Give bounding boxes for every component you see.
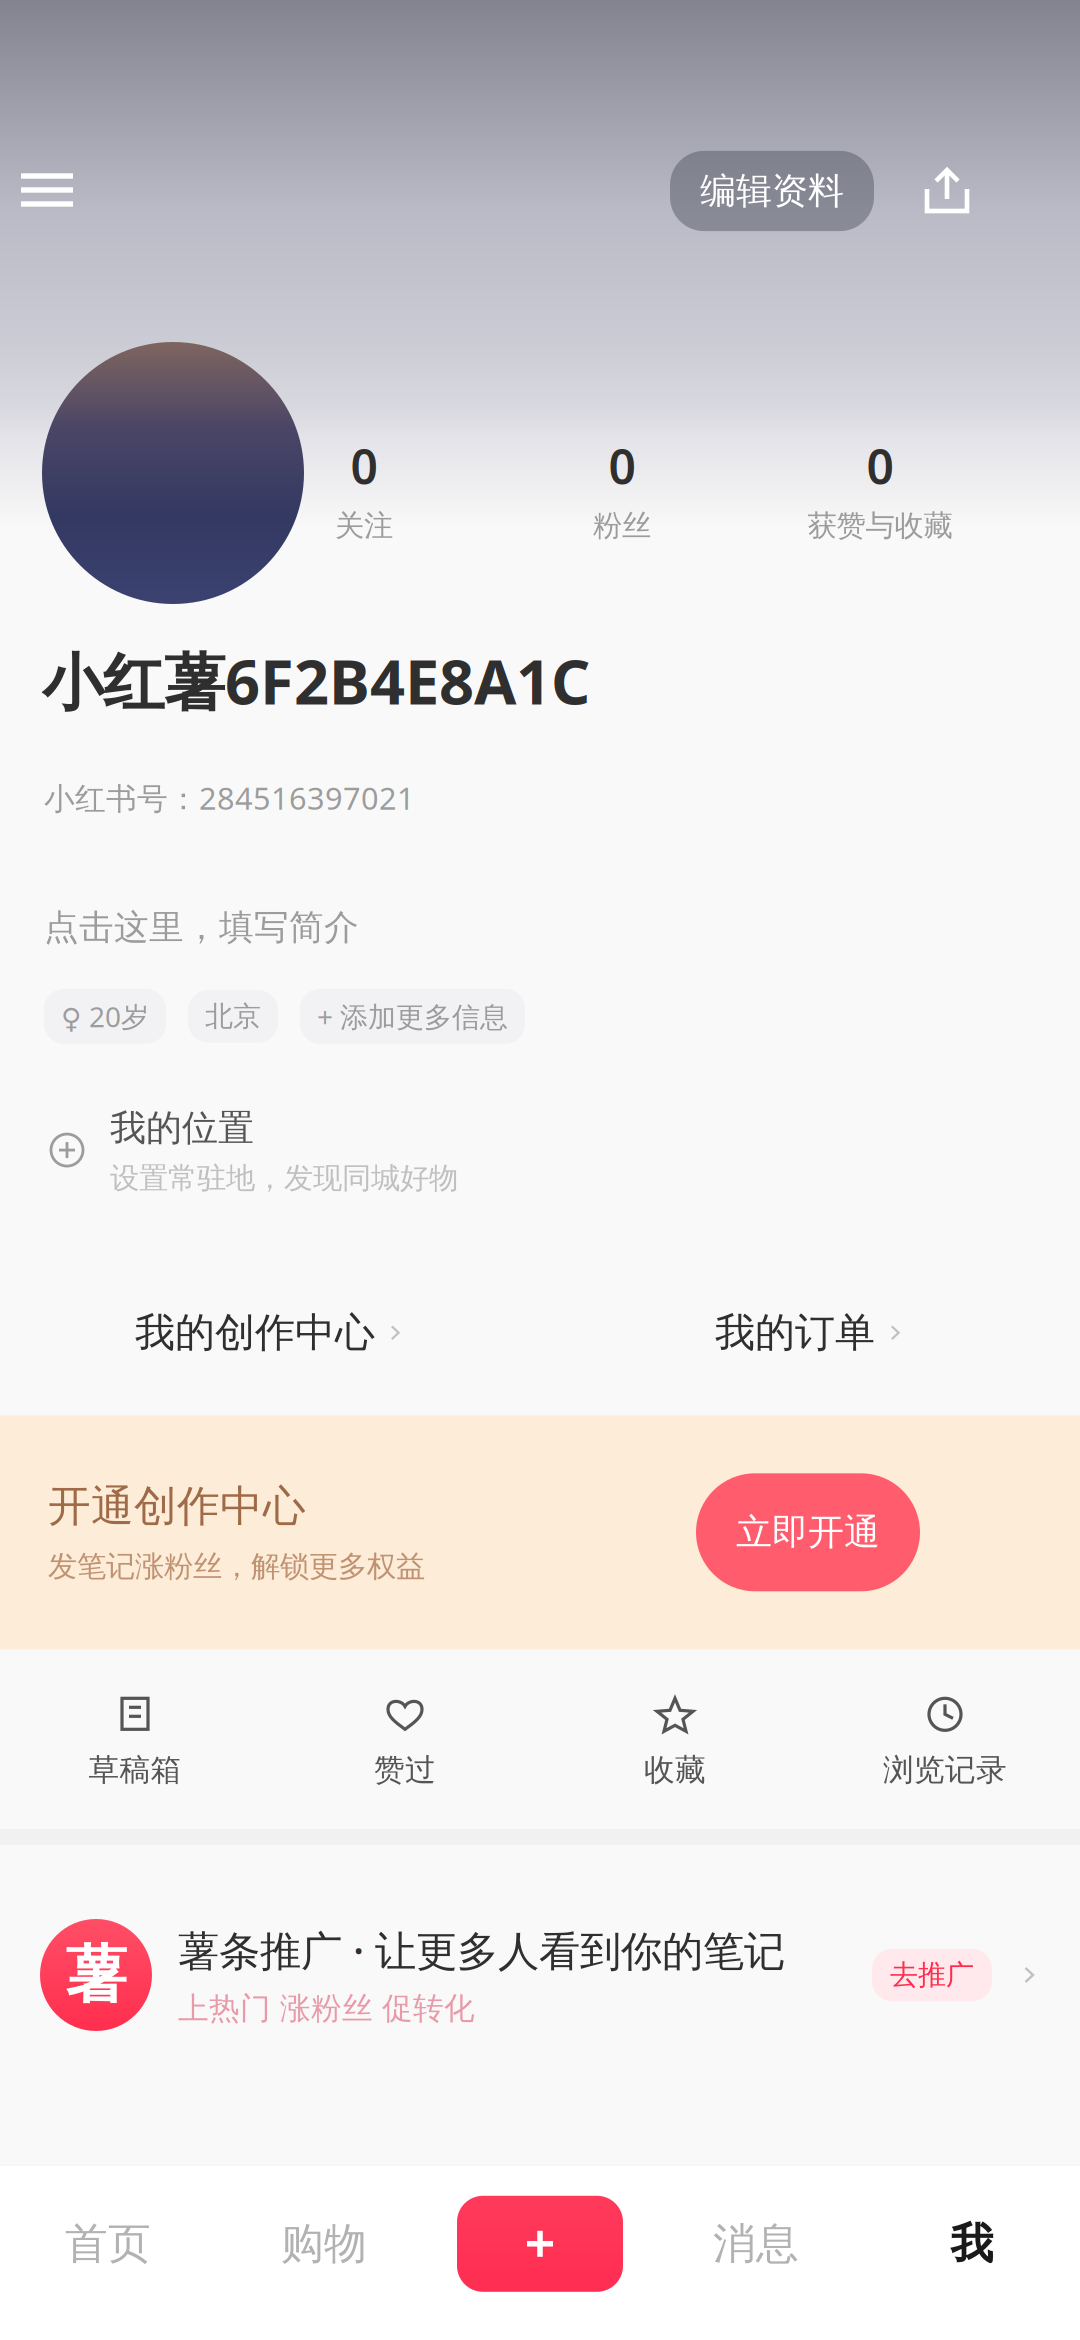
button[interactable]: 0 — [522, 434, 722, 544]
staticText: 点击这里，填写简介 — [44, 906, 359, 949]
staticText: 发笔记涨粉丝，解锁更多权益 — [48, 1548, 425, 1584]
button[interactable]: 赞过 — [270, 1693, 540, 1789]
staticText: 获赞与收藏 — [807, 508, 952, 544]
button[interactable]: 我 — [864, 2192, 1080, 2296]
button[interactable]: 编辑资料 — [670, 151, 874, 231]
button[interactable]: 浏览记录 — [810, 1693, 1080, 1789]
staticText: 浏览记录 — [883, 1751, 1007, 1789]
button[interactable]: 薯 — [0, 1885, 1080, 2065]
staticText: 收藏 — [644, 1751, 706, 1789]
staticText: 赞过 — [374, 1751, 436, 1789]
staticText: 去推广 — [890, 1958, 974, 1992]
staticText: 我 — [950, 2218, 993, 2270]
button[interactable]: 菜单 — [4, 148, 90, 234]
button[interactable]: 分享 — [914, 158, 980, 224]
staticText: 北京 — [205, 999, 261, 1033]
staticText: 我的订单 — [715, 1308, 875, 1357]
button[interactable]: 消息 — [648, 2192, 864, 2296]
button[interactable]: 收藏 — [540, 1693, 810, 1789]
staticText: 首页 — [65, 2218, 151, 2270]
staticText: 薯 — [65, 1937, 126, 2013]
button[interactable]: 0 — [264, 434, 464, 544]
staticText: 我的位置 — [110, 1106, 254, 1150]
button[interactable]: 购物 — [216, 2192, 432, 2296]
staticText: 0 — [608, 434, 635, 498]
staticText: 上热门 涨粉丝 促转化 — [178, 1990, 475, 2027]
button[interactable]: 0 — [780, 434, 980, 544]
button[interactable]: 我的订单 — [540, 1280, 1080, 1385]
staticText: 消息 — [713, 2218, 799, 2270]
button[interactable]: 开通创作中心 — [0, 1415, 1080, 1649]
staticText: 设置常驻地，发现同城好物 — [110, 1160, 458, 1196]
staticText: 小红书号：284516397021 — [44, 777, 415, 818]
staticText: 薯条推广 · 让更多人看到你的笔记 — [178, 1923, 785, 1978]
button[interactable]: 发布笔记 — [432, 2196, 648, 2292]
staticText: 我的创作中心 — [135, 1308, 375, 1357]
staticText: 编辑资料 — [700, 169, 844, 213]
staticText: 开通创作中心 — [48, 1480, 306, 1532]
staticText: 购物 — [281, 2218, 367, 2270]
staticText: 关注 — [335, 508, 393, 544]
staticText: ♀ 20岁 — [61, 998, 149, 1035]
staticText: 粉丝 — [593, 508, 651, 544]
button[interactable]: 草稿箱 — [0, 1693, 270, 1789]
button[interactable]: 头像 — [42, 342, 304, 604]
button[interactable]: 首页 — [0, 2192, 216, 2296]
button[interactable]: 我的位置 — [0, 1044, 1080, 1196]
staticText: + 添加更多信息 — [317, 998, 508, 1035]
staticText: 立即开通 — [736, 1510, 880, 1554]
staticText: 0 — [866, 434, 893, 498]
staticText: 0 — [350, 434, 377, 498]
button[interactable]: 我的创作中心 — [0, 1280, 540, 1385]
staticText: 草稿箱 — [88, 1751, 181, 1789]
staticText: 小红薯6F2B4E8A1C — [42, 640, 590, 721]
